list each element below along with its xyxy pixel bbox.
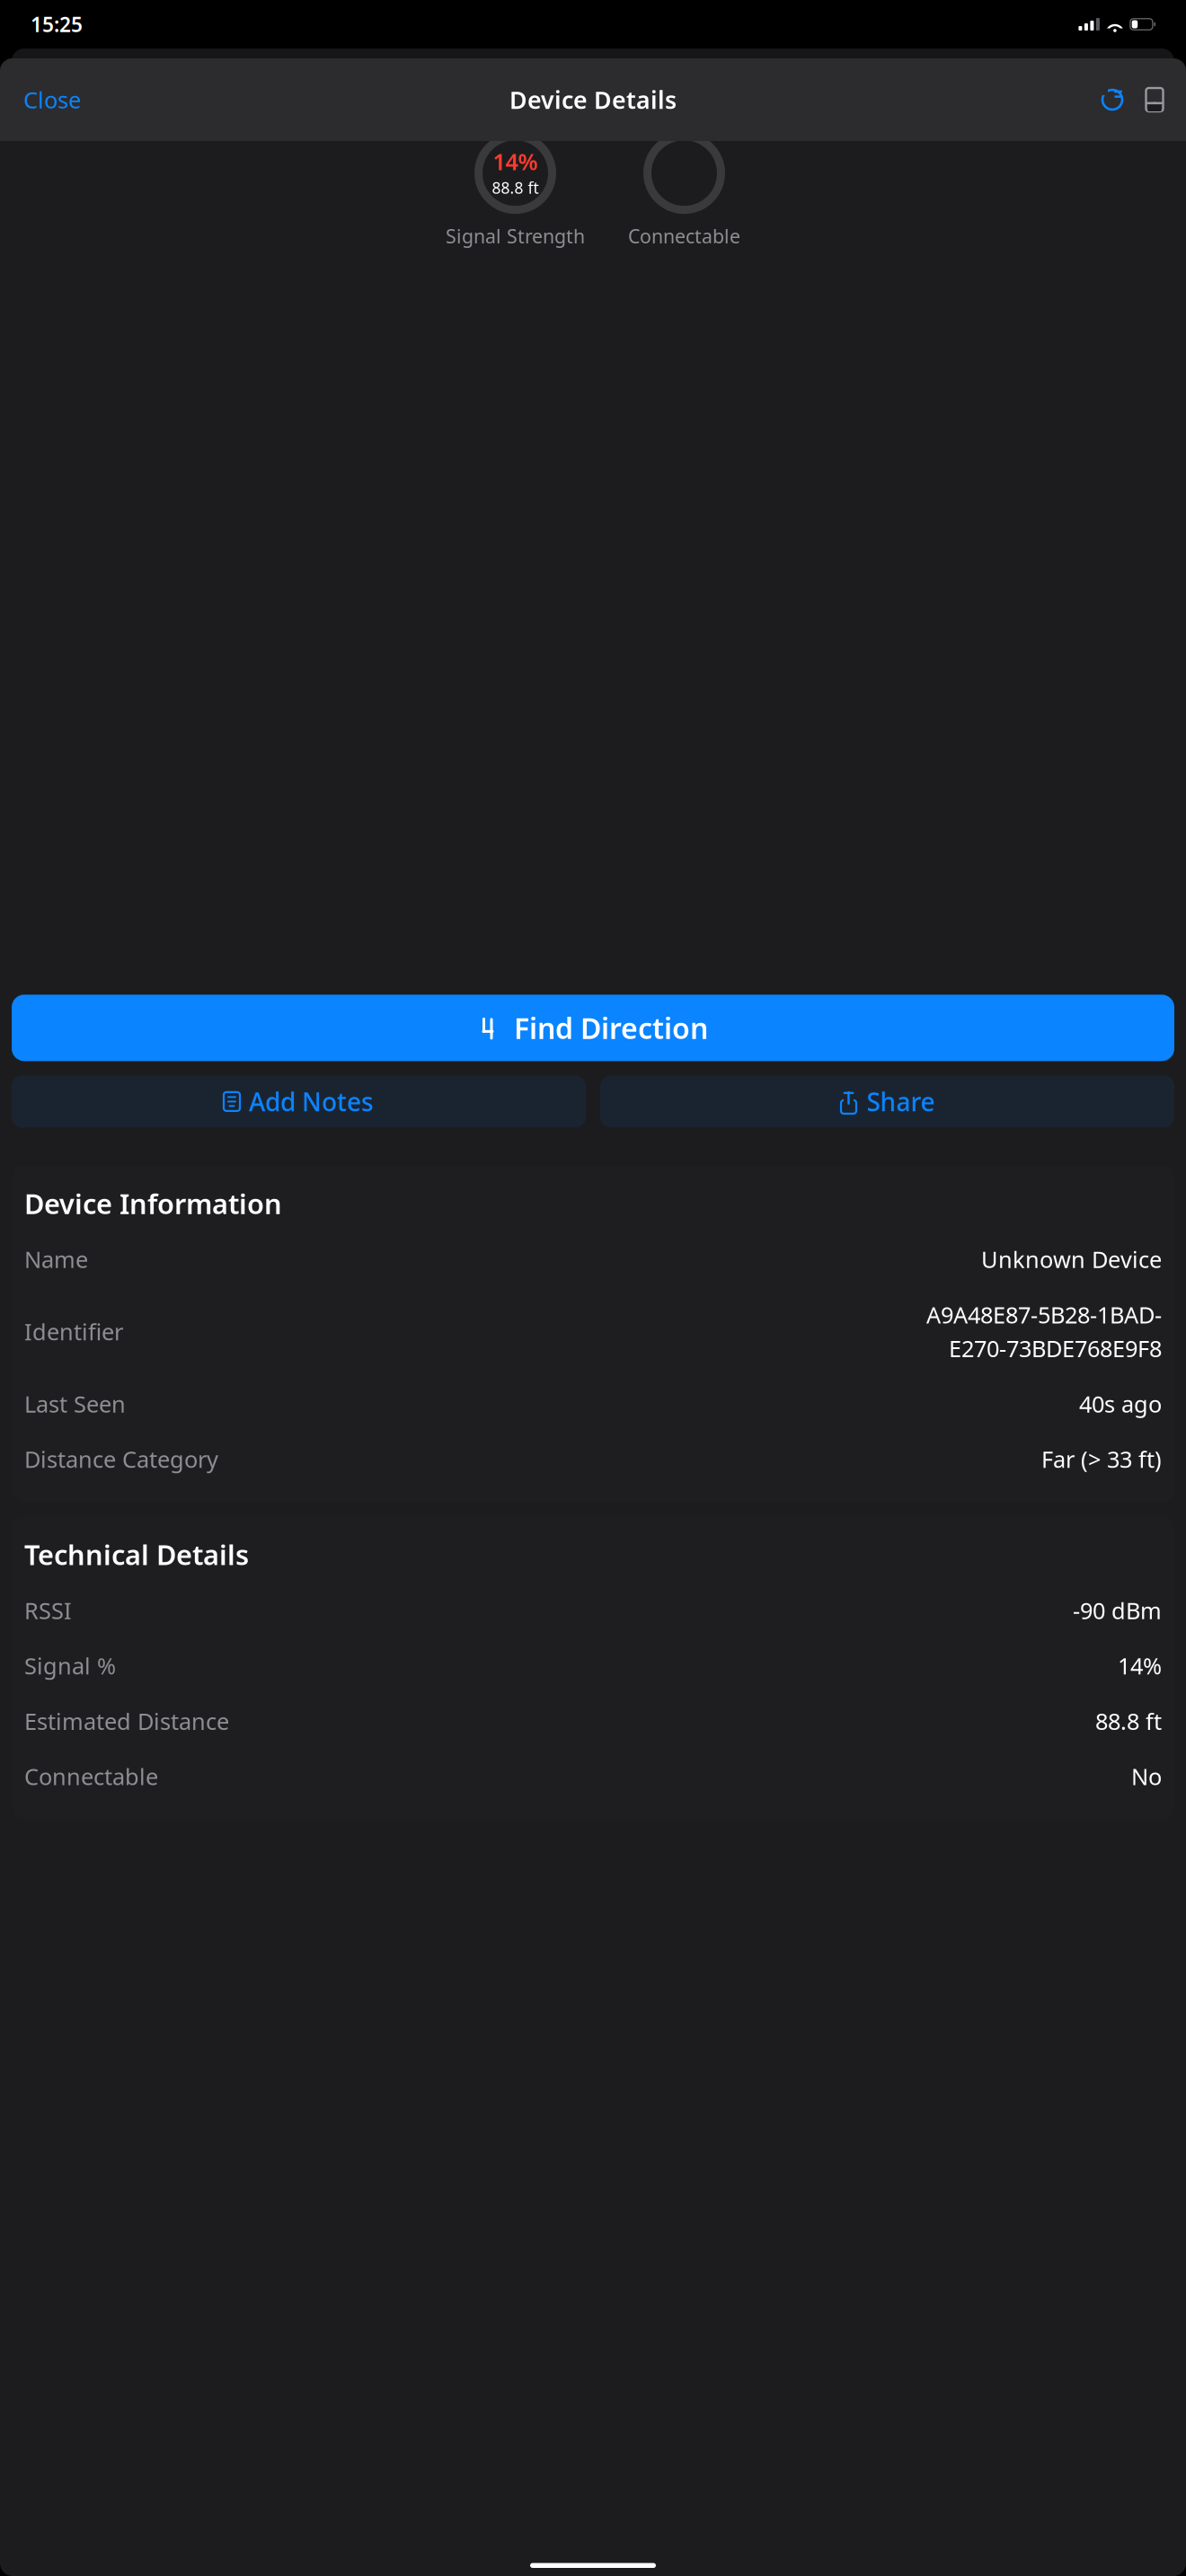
staticText: Close <box>23 85 81 115</box>
staticText: 15:25 <box>31 11 83 38</box>
staticText: Estimated Distance <box>24 1706 229 1736</box>
staticText: Connectable <box>628 223 740 249</box>
staticText: Distance Category <box>24 1444 218 1474</box>
staticText: Far (> 33 ft) <box>1041 1444 1162 1474</box>
staticText: Last Seen <box>24 1389 126 1419</box>
staticText: Identifier <box>24 1316 123 1347</box>
staticText: 88.8 ft <box>1095 1706 1162 1736</box>
button[interactable]: Find Direction <box>12 995 1174 1061</box>
staticText: 88.8 ft <box>492 177 539 198</box>
staticText: No <box>1131 1761 1162 1792</box>
staticText: RSSI <box>24 1595 72 1625</box>
button[interactable]: Refresh <box>1094 82 1130 118</box>
staticText: 14% <box>1118 1651 1162 1681</box>
staticText: Signal Strength <box>446 223 585 249</box>
staticText: Unknown Device <box>981 1244 1162 1274</box>
button[interactable]: Share <box>600 1075 1174 1128</box>
staticText: Add Notes <box>249 1085 374 1118</box>
staticText: Name <box>24 1244 88 1274</box>
staticText: -90 dBm <box>1073 1595 1162 1625</box>
staticText: Connectable <box>24 1761 158 1792</box>
staticText: Share <box>867 1085 935 1118</box>
staticText: Find Direction <box>514 1009 708 1047</box>
staticText: E270-73BDE768E9F8 <box>949 1333 1162 1363</box>
button[interactable]: Close <box>20 76 84 124</box>
staticText: 14% <box>493 146 538 176</box>
staticText: Device Details <box>509 84 677 116</box>
staticText: Technical Details <box>24 1536 249 1573</box>
staticText: Signal % <box>24 1651 116 1681</box>
button[interactable]: Add Notes <box>12 1075 586 1128</box>
staticText: Device Information <box>24 1185 282 1222</box>
button[interactable]: Bookmark <box>1130 84 1166 116</box>
staticText: 40s ago <box>1079 1389 1162 1419</box>
staticText: A9A48E87-5B28-1BAD- <box>926 1299 1162 1330</box>
